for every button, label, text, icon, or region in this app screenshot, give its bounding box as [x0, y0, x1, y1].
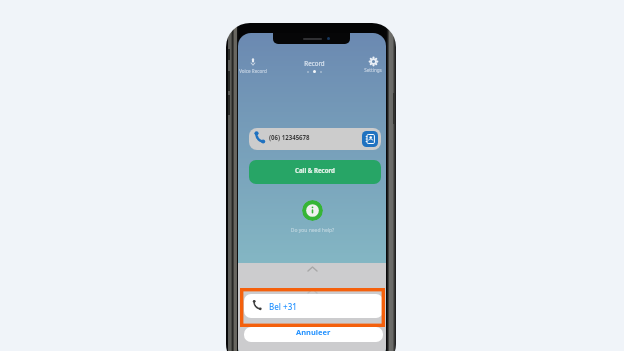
button[interactable]: Bel +31	[244, 294, 383, 318]
staticText: Call & Record	[295, 166, 335, 174]
staticText: Record	[304, 59, 325, 67]
staticText: Annuleer	[296, 327, 331, 337]
button[interactable]: Choose contact	[362, 131, 378, 147]
button[interactable]: Do you need help	[302, 200, 323, 221]
button[interactable]: Voice Record	[238, 58, 269, 74]
button[interactable]: Settings	[361, 57, 385, 73]
button[interactable]: Annuleer	[244, 327, 383, 342]
staticText: Bel +31	[269, 301, 297, 312]
staticText: (06) 12345678	[269, 133, 310, 141]
button[interactable]: Call & Record	[249, 160, 381, 184]
staticText: Settings	[364, 67, 382, 73]
staticText: Voice Record	[239, 68, 267, 74]
button[interactable]: (06) 12345678	[249, 128, 381, 150]
staticText: Do you need help?	[282, 227, 343, 234]
